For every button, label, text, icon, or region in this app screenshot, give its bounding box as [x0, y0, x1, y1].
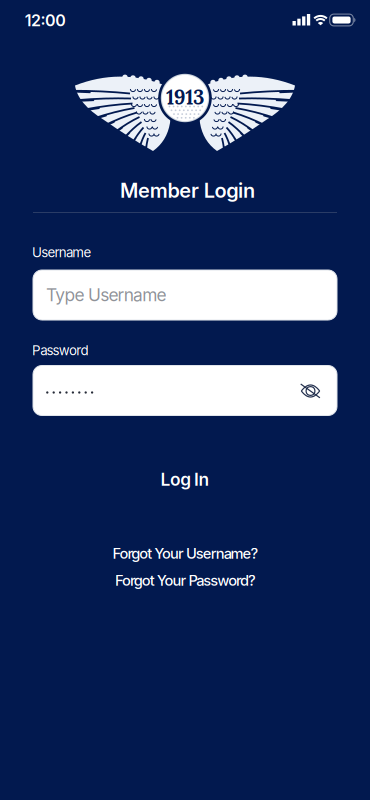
staticText: Forgot Your Username?	[112, 545, 258, 562]
button[interactable]	[295, 376, 325, 406]
button[interactable]	[33, 365, 337, 415]
staticText: Username	[32, 245, 91, 260]
staticText: 1913	[166, 84, 204, 110]
staticText: Forgot Your Password?	[115, 572, 256, 589]
button[interactable]: Forgot Your Username?	[112, 545, 258, 562]
staticText: Log In	[160, 469, 209, 490]
button[interactable]: Type Username	[33, 270, 337, 320]
staticText: Type Username	[46, 285, 166, 305]
button[interactable]: Forgot Your Password?	[115, 572, 256, 589]
staticText: Password	[32, 343, 88, 358]
staticText: 12:00	[25, 11, 66, 30]
staticText: Member Login	[120, 179, 255, 202]
button[interactable]: Log In	[160, 469, 209, 490]
